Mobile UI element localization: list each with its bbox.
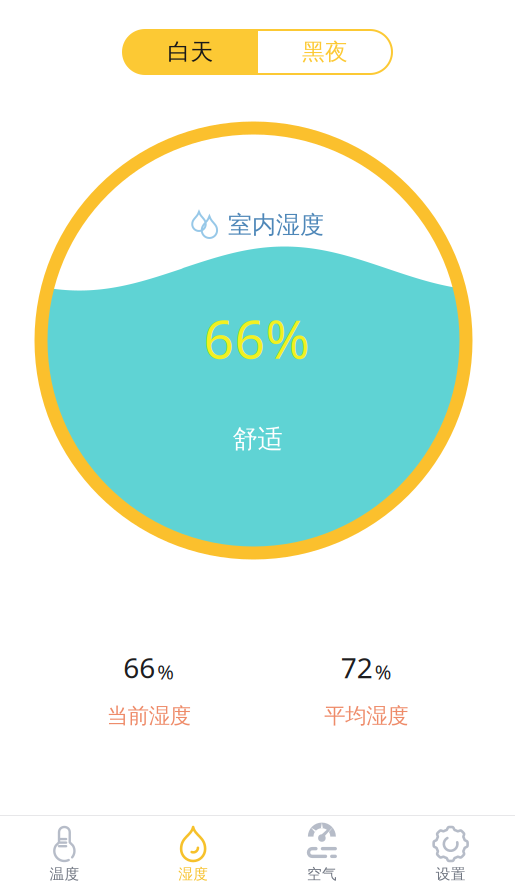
button[interactable]: 黑夜 bbox=[258, 30, 392, 74]
staticText: 当前湿度 bbox=[107, 703, 191, 729]
staticText: 66% bbox=[203, 303, 309, 373]
staticText: % bbox=[375, 658, 392, 685]
button[interactable]: 温度 bbox=[0, 815, 129, 895]
button[interactable]: 白天 bbox=[123, 30, 258, 74]
staticText: 平均湿度 bbox=[324, 703, 408, 729]
staticText: 空气 bbox=[307, 865, 337, 883]
staticText: % bbox=[157, 658, 174, 685]
button[interactable]: 空气 bbox=[257, 815, 386, 895]
staticText: 黑夜 bbox=[302, 38, 348, 66]
staticText: 白天 bbox=[167, 38, 213, 66]
button[interactable]: 设置 bbox=[386, 815, 515, 895]
staticText: 室内湿度 bbox=[228, 210, 324, 240]
button[interactable]: 湿度 bbox=[129, 815, 258, 895]
staticText: 设置 bbox=[436, 865, 466, 883]
staticText: 66 bbox=[123, 649, 155, 686]
staticText: 72 bbox=[341, 649, 373, 686]
staticText: 舒适 bbox=[232, 423, 282, 454]
staticText: 温度 bbox=[49, 865, 79, 883]
staticText: 湿度 bbox=[178, 865, 208, 883]
